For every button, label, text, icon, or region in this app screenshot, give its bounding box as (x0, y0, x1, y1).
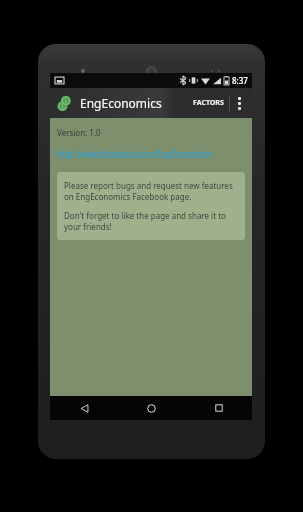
staticText: Don't forget to like the page and share … (64, 210, 238, 232)
button[interactable]: Recent apps (185, 396, 252, 420)
staticText: Version: 1.0 (57, 127, 101, 138)
button[interactable]: Home (118, 396, 185, 420)
button[interactable]: More options (230, 88, 248, 118)
staticText: http://www.facebook.com/EngEconomics (57, 148, 212, 159)
button[interactable]: FACTORS (188, 92, 229, 114)
button[interactable]: Back (50, 396, 118, 420)
staticText: 8:37 (232, 75, 248, 86)
button[interactable]: http://www.facebook.com/EngEconomics (57, 148, 212, 159)
staticText: Please report bugs and request new featu… (64, 180, 238, 202)
staticText: FACTORS (193, 98, 224, 108)
staticText: EngEconomics (80, 95, 162, 111)
